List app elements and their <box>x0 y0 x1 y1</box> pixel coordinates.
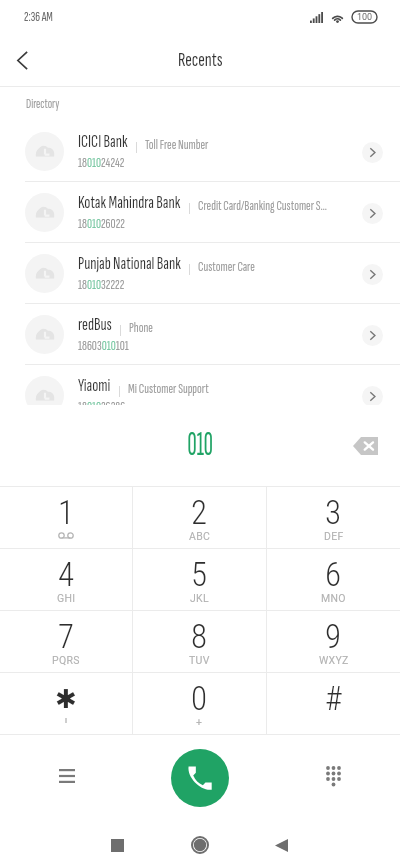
staticText: 7 <box>58 617 75 656</box>
staticText: 1801026022 <box>78 215 125 232</box>
button[interactable]: ICICI Bank <box>0 121 400 182</box>
staticText: 1801032222 <box>78 276 125 293</box>
staticText: 8 <box>191 617 208 656</box>
staticText: # <box>325 679 342 718</box>
staticText: + <box>196 716 203 728</box>
staticText: Toll Free Number <box>145 136 209 153</box>
staticText: 3 <box>325 493 342 532</box>
button[interactable]: Recent apps <box>95 823 139 866</box>
staticText: 5 <box>191 555 208 594</box>
staticText: TUV <box>189 654 210 666</box>
button[interactable]: Open details <box>350 191 394 235</box>
button[interactable]: 6 <box>267 549 400 610</box>
staticText: ICICI Bank <box>78 131 128 153</box>
staticText: ✱ <box>55 684 77 714</box>
staticText: 1 <box>58 493 75 532</box>
staticText: Customer Care <box>198 258 255 275</box>
staticText: 010 <box>188 424 213 465</box>
button[interactable]: Yiaomi <box>0 365 400 426</box>
staticText: 18603010101 <box>78 337 129 354</box>
staticText: DEF <box>324 530 344 542</box>
button[interactable]: # <box>267 673 400 734</box>
button[interactable]: Open details <box>350 252 394 296</box>
staticText: WXYZ <box>319 654 349 666</box>
button[interactable]: Kotak Mahindra Bank <box>0 182 400 243</box>
staticText: 6 <box>325 555 342 594</box>
button[interactable]: redBus <box>0 304 400 365</box>
button[interactable]: Back <box>259 823 303 866</box>
staticText: Yiaomi <box>78 375 111 397</box>
staticText: Phone <box>129 319 153 336</box>
staticText: Mi Customer Support <box>128 380 209 397</box>
staticText: 4 <box>58 555 75 594</box>
button[interactable]: 5 <box>133 549 266 610</box>
button[interactable]: Home <box>178 823 222 866</box>
button[interactable]: Open details <box>350 374 394 418</box>
button[interactable]: Open details <box>350 313 394 357</box>
button[interactable]: 3 <box>267 487 400 548</box>
button[interactable]: Call <box>171 749 229 807</box>
staticText: redBus <box>78 314 112 336</box>
button[interactable]: Menu <box>45 754 89 798</box>
button[interactable]: Punjab National Bank <box>0 243 400 304</box>
staticText: Punjab National Bank <box>78 253 181 275</box>
button[interactable]: 4 <box>0 549 132 610</box>
button[interactable]: Dialpad <box>311 754 355 798</box>
button[interactable]: 9 <box>267 611 400 672</box>
button[interactable]: 2 <box>133 487 266 548</box>
staticText: 1801026286 <box>78 398 126 415</box>
staticText: 100 <box>357 12 373 23</box>
button[interactable]: Open details <box>350 130 394 174</box>
staticText: Kotak Mahindra Bank <box>78 192 181 214</box>
staticText: Recents <box>178 48 223 72</box>
button[interactable]: 1 <box>0 487 132 548</box>
staticText: 2 <box>191 493 208 532</box>
staticText: Directory <box>26 96 60 112</box>
button[interactable]: 0 <box>133 673 266 734</box>
staticText: Credit Card/Banking Customer S… <box>198 197 328 214</box>
staticText: GHI <box>57 592 76 604</box>
staticText: 9 <box>325 617 342 656</box>
button[interactable]: 7 <box>0 611 132 672</box>
staticText: MNO <box>321 592 346 604</box>
button[interactable]: 8 <box>133 611 266 672</box>
button[interactable]: Backspace <box>342 423 388 469</box>
staticText: PQRS <box>52 654 80 666</box>
button[interactable]: ✱ <box>0 673 132 734</box>
staticText: 2:36 AM <box>24 9 53 25</box>
staticText: ABC <box>189 530 211 542</box>
button[interactable]: Back <box>0 38 44 82</box>
staticText: JKL <box>190 592 209 604</box>
staticText: 0 <box>191 679 208 718</box>
staticText: 1801024242 <box>78 154 125 171</box>
